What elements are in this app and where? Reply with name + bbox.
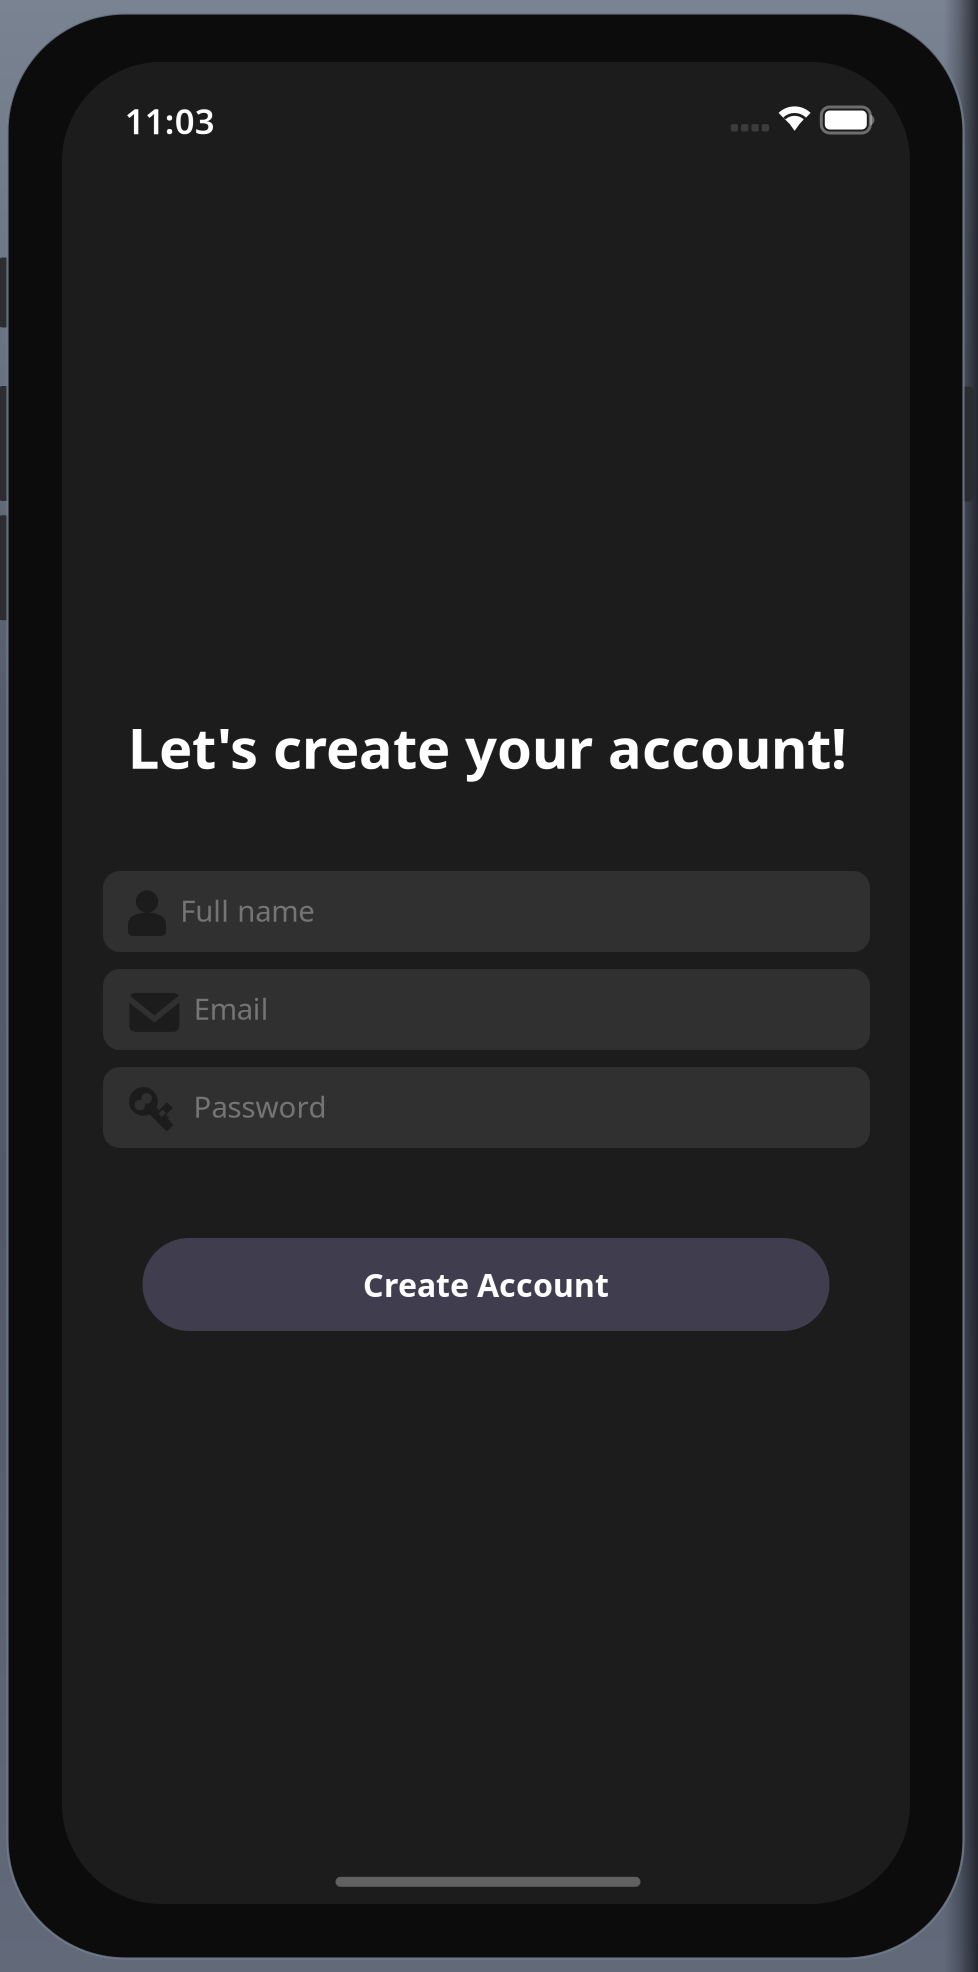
button[interactable]: Full name <box>103 871 870 952</box>
staticText: 11:03 <box>125 98 215 144</box>
button[interactable]: Email <box>103 969 870 1050</box>
staticText: Create Account <box>363 1263 609 1306</box>
staticText: Password <box>193 1087 326 1126</box>
button[interactable]: Password <box>103 1067 870 1148</box>
button[interactable]: Create Account <box>142 1238 829 1331</box>
staticText: Let's create your account! <box>128 710 847 784</box>
staticText: Email <box>194 989 269 1028</box>
staticText: Full name <box>180 891 315 930</box>
